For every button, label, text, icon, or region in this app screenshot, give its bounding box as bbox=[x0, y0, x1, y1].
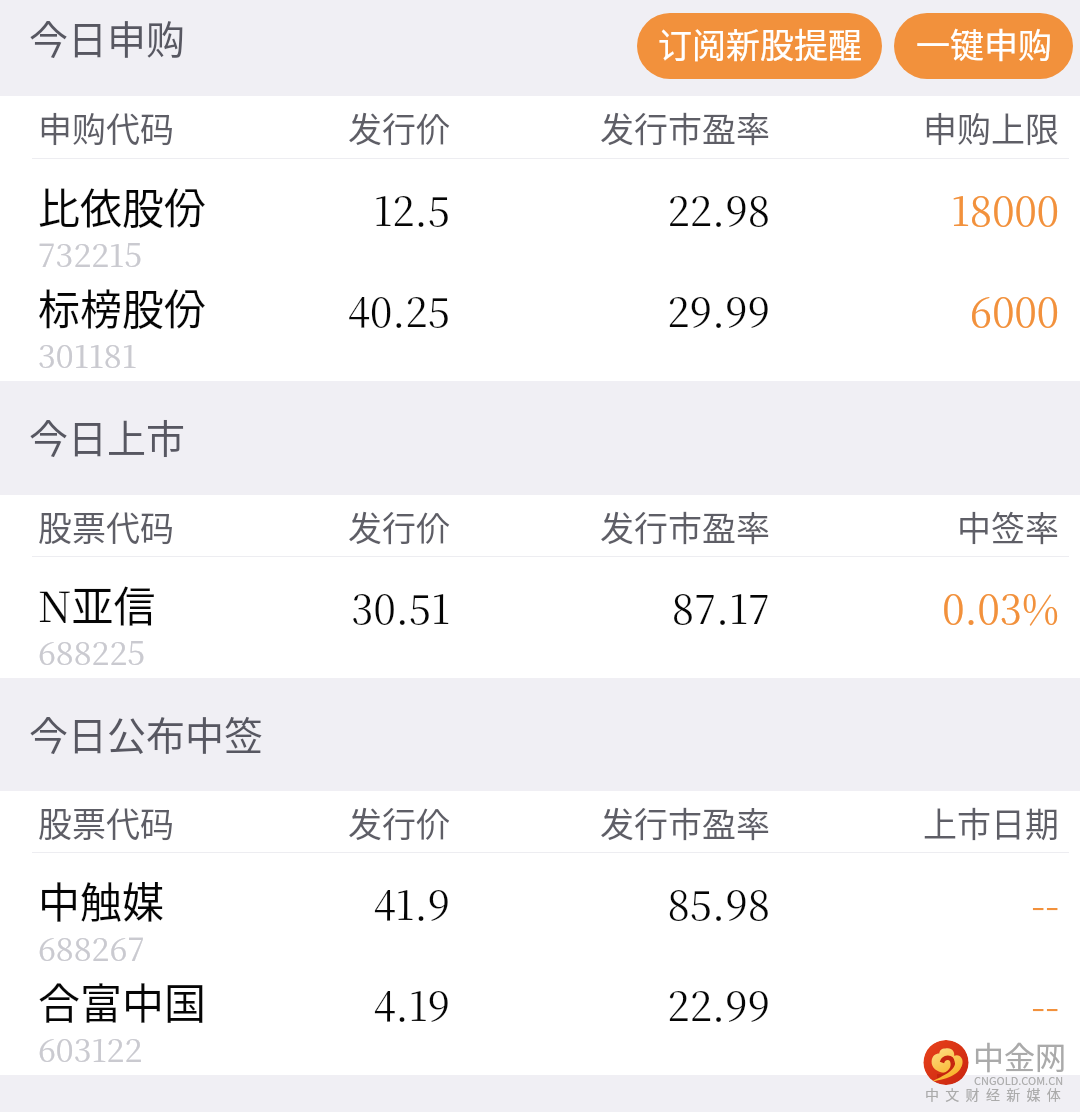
button[interactable]: 订阅新股提醒 bbox=[637, 13, 882, 79]
staticText: 发行市盈率 bbox=[0, 798, 770, 847]
staticText: 发行市盈率 bbox=[0, 103, 770, 152]
staticText: 中金网 bbox=[973, 1033, 1066, 1078]
staticText: 中触媒 bbox=[38, 869, 165, 930]
staticText: 合富中国 bbox=[38, 970, 207, 1031]
staticText: 发行市盈率 bbox=[0, 502, 770, 551]
staticText: 4.19 bbox=[0, 975, 450, 1032]
staticText: 732215 bbox=[38, 230, 143, 276]
staticText: 申购代码 bbox=[38, 103, 174, 152]
staticText: 股票代码 bbox=[38, 798, 174, 847]
staticText: 301181 bbox=[38, 331, 137, 377]
staticText: 一键申购 bbox=[916, 19, 1052, 68]
staticText: 股票代码 bbox=[38, 502, 174, 551]
staticText: 12.5 bbox=[0, 180, 450, 237]
staticText: 0.03% bbox=[0, 578, 1059, 635]
staticText: 6000 bbox=[0, 281, 1059, 338]
staticText: 688225 bbox=[38, 628, 146, 674]
staticText: 标榜股份 bbox=[38, 276, 207, 337]
staticText: 22.99 bbox=[0, 975, 770, 1032]
staticText: 申购上限 bbox=[0, 103, 1059, 152]
staticText: 比依股份 bbox=[38, 175, 207, 236]
staticText: -- bbox=[0, 874, 1059, 931]
staticText: 中文财经新媒体 bbox=[925, 1084, 1068, 1104]
button[interactable]: 比依股份 bbox=[0, 159, 1080, 260]
button[interactable]: 一键申购 bbox=[894, 13, 1073, 79]
staticText: 85.98 bbox=[0, 874, 770, 931]
staticText: 22.98 bbox=[0, 180, 770, 237]
staticText: 688267 bbox=[38, 924, 145, 970]
staticText: 87.17 bbox=[0, 578, 770, 635]
staticText: 发行价 bbox=[0, 502, 450, 551]
staticText: 今日申购 bbox=[29, 9, 186, 65]
staticText: 中签率 bbox=[0, 502, 1059, 551]
button[interactable]: 标榜股份 bbox=[0, 260, 1080, 361]
button[interactable]: 合富中国 bbox=[0, 954, 1080, 1055]
staticText: 发行价 bbox=[0, 798, 450, 847]
staticText: 40.25 bbox=[0, 281, 450, 338]
staticText: 今日上市 bbox=[29, 408, 186, 464]
staticText: 29.99 bbox=[0, 281, 770, 338]
button[interactable]: 中触媒 bbox=[0, 853, 1080, 954]
staticText: 今日公布中签 bbox=[29, 705, 264, 761]
button[interactable]: N亚信 bbox=[0, 557, 1080, 658]
staticText: 603122 bbox=[38, 1025, 143, 1071]
staticText: 发行价 bbox=[0, 103, 450, 152]
staticText: 18000 bbox=[0, 180, 1059, 237]
staticText: 30.51 bbox=[0, 578, 450, 635]
staticText: 上市日期 bbox=[0, 798, 1059, 847]
staticText: 41.9 bbox=[0, 874, 450, 931]
staticText: -- bbox=[0, 975, 1059, 1032]
staticText: N亚信 bbox=[38, 573, 156, 634]
staticText: CNGOLD.COM.CN bbox=[974, 1072, 1064, 1088]
staticText: 订阅新股提醒 bbox=[658, 19, 862, 68]
